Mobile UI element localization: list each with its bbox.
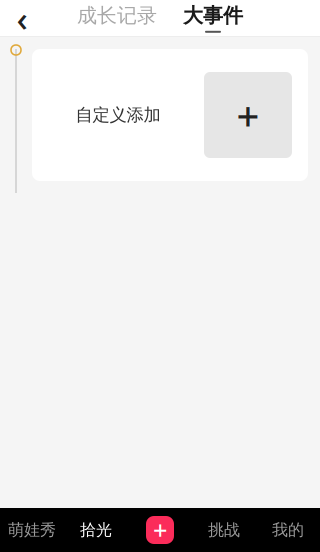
button[interactable]: 拾光	[64, 508, 128, 552]
staticText: +	[236, 88, 259, 141]
button[interactable]: 萌娃秀	[0, 508, 64, 552]
button[interactable]: 大事件	[183, 3, 243, 33]
staticText: 拾光	[80, 520, 112, 540]
button[interactable]: Back	[0, 0, 44, 36]
button[interactable]: 我的	[256, 508, 320, 552]
button[interactable]: 成长记录	[77, 3, 157, 33]
staticText: 成长记录	[77, 3, 157, 28]
staticText: 自定义添加	[75, 104, 160, 126]
button[interactable]: Add custom event	[204, 72, 292, 158]
staticText: ‹	[16, 0, 27, 41]
staticText: 萌娃秀	[8, 520, 56, 540]
button[interactable]: 挑战	[192, 508, 256, 552]
button[interactable]: Create	[128, 508, 192, 552]
staticText: +	[153, 513, 167, 547]
staticText: 挑战	[208, 520, 240, 540]
staticText: 我的	[272, 520, 304, 540]
staticText: 大事件	[183, 3, 243, 28]
